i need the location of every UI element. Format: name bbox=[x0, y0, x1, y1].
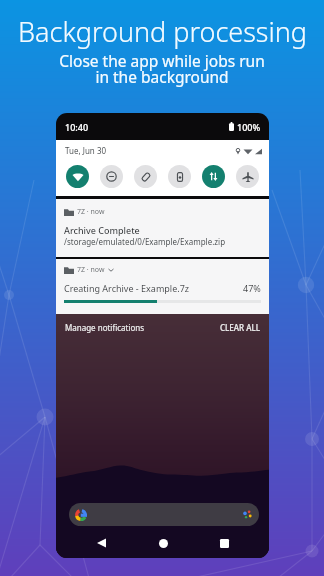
staticText: Background processing bbox=[18, 13, 307, 50]
staticText: Archive Complete bbox=[64, 224, 140, 236]
button[interactable]: Mobile data bbox=[202, 165, 225, 188]
staticText: 7Z · now bbox=[77, 265, 105, 275]
button[interactable]: Home bbox=[153, 533, 173, 553]
button[interactable]: Manage notifications bbox=[65, 322, 145, 333]
staticText: Close the app while jobs run in the back… bbox=[59, 50, 265, 88]
button[interactable]: Auto rotate bbox=[134, 165, 157, 188]
button[interactable]: Recent apps bbox=[214, 533, 234, 553]
button[interactable]: Do not disturb bbox=[100, 165, 123, 188]
button[interactable]: Battery saver bbox=[168, 165, 191, 188]
staticText: 100% bbox=[237, 121, 261, 133]
staticText: 47% bbox=[243, 282, 261, 294]
staticText: Tue, Jun 30 bbox=[65, 145, 107, 156]
button[interactable]: Back bbox=[91, 533, 111, 553]
button[interactable]: 7Z · now bbox=[56, 259, 269, 314]
button[interactable]: Wi-Fi bbox=[66, 165, 89, 188]
button[interactable]: CLEAR ALL bbox=[220, 322, 260, 333]
staticText: 7Z · now bbox=[77, 207, 105, 217]
staticText: /storage/emulated/0/Example/Example.zip bbox=[64, 236, 226, 247]
button[interactable]: Airplane mode bbox=[236, 165, 259, 188]
button[interactable]: 7Z · now bbox=[56, 199, 269, 257]
button[interactable]: Search bbox=[69, 503, 259, 526]
staticText: 10:40 bbox=[65, 121, 89, 133]
staticText: Creating Archive - Example.7z bbox=[64, 282, 190, 294]
